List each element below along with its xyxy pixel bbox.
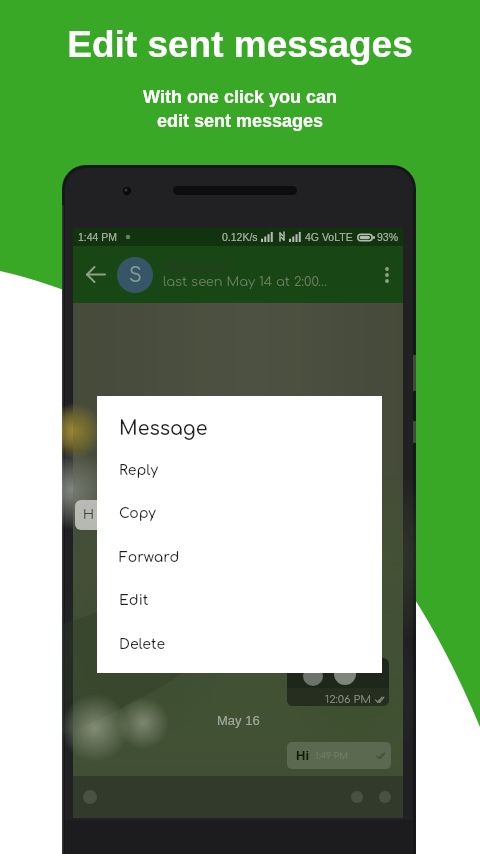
button[interactable]: Back <box>73 246 117 303</box>
staticText: Copy <box>119 506 156 522</box>
staticText: Reply <box>119 463 158 479</box>
staticText: S <box>129 265 142 286</box>
staticText: 93% <box>377 231 399 243</box>
staticText: May 16 <box>217 713 260 728</box>
staticText: Edit <box>119 593 149 609</box>
button[interactable]: Message <box>97 410 382 446</box>
staticText: Hi <box>296 748 309 763</box>
button[interactable]: More options <box>371 246 403 303</box>
button[interactable]: Copy <box>97 496 382 532</box>
button[interactable]: Reply <box>97 453 382 489</box>
staticText: Message <box>119 418 208 439</box>
staticText: last seen May 14 at 2:00… <box>163 275 328 289</box>
staticText: Forward <box>119 550 180 566</box>
staticText: Edit sent messages <box>67 24 413 65</box>
staticText: With one click you can edit sent message… <box>143 87 337 131</box>
staticText: 4G VoLTE <box>305 231 353 243</box>
button[interactable]: Edit <box>97 583 382 619</box>
staticText: H <box>83 508 94 522</box>
button[interactable]: Forward <box>97 540 382 576</box>
staticText: Delete <box>119 637 166 653</box>
button[interactable]: Delete <box>97 627 382 663</box>
staticText: 0.12K/s <box>222 231 258 243</box>
staticText: 1:49 PM <box>315 751 349 761</box>
staticText: 12:06 PM <box>325 693 372 705</box>
staticText: 1:44 PM <box>78 231 118 243</box>
